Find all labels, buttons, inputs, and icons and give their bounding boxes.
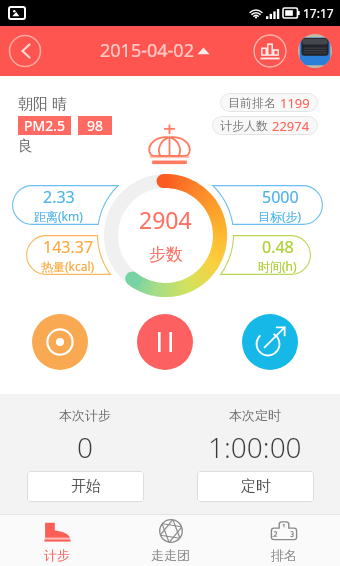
staticText: 排名 <box>271 547 297 563</box>
staticText: 143.37 <box>43 236 94 258</box>
staticText: 目前排名 <box>228 95 276 110</box>
staticText: 朝阳 晴 <box>18 93 67 113</box>
staticText: 定时 <box>241 477 271 496</box>
button[interactable]: 开始 <box>27 471 144 502</box>
staticText: 2.33 <box>43 186 75 208</box>
staticText: 1:00:00 <box>208 428 302 466</box>
button[interactable]: 走走团 <box>114 515 227 566</box>
button[interactable]: 定时 <box>197 471 314 502</box>
staticText: 走走团 <box>151 547 190 563</box>
staticText: PM2.5 <box>24 116 65 135</box>
staticText: 5000 <box>262 186 299 208</box>
staticText: 良 <box>18 137 33 156</box>
staticText: 2904 <box>139 204 192 235</box>
staticText: 步数 <box>149 244 183 265</box>
button[interactable]: 2.33 <box>12 185 124 225</box>
button[interactable]: 目前排名 <box>220 93 318 112</box>
button[interactable]: Back <box>8 34 42 68</box>
button[interactable]: 计步 <box>0 515 114 566</box>
button[interactable]: Profile <box>298 34 332 68</box>
button[interactable]: 计步人数 <box>212 116 318 135</box>
staticText: 0.48 <box>262 236 294 258</box>
staticText: 0 <box>77 428 93 466</box>
button[interactable]: 5000 <box>216 185 323 225</box>
staticText: 2015-04-02 <box>100 38 194 63</box>
staticText: 22974 <box>272 117 310 135</box>
staticText: 1199 <box>280 94 310 112</box>
staticText: 本次定时 <box>229 407 281 423</box>
button[interactable]: Record <box>32 314 88 370</box>
staticText: 计步人数 <box>220 118 268 133</box>
button[interactable]: 排名 <box>227 515 340 566</box>
staticText: 距离(km) <box>34 208 83 224</box>
staticText: 计步 <box>44 547 70 563</box>
button[interactable]: Share <box>242 314 298 370</box>
staticText: 时间(h) <box>258 258 297 274</box>
staticText: 热量(kcal) <box>41 258 95 274</box>
staticText: 本次计步 <box>59 407 111 423</box>
button[interactable]: 0.48 <box>228 235 311 275</box>
staticText: 开始 <box>71 477 101 496</box>
staticText: 98 <box>87 116 104 135</box>
button[interactable]: Pause <box>137 314 193 370</box>
button[interactable]: Statistics <box>253 34 287 68</box>
staticText: 17:17 <box>303 5 334 21</box>
button[interactable]: 143.37 <box>26 235 126 275</box>
staticText: 目标(步) <box>258 208 302 224</box>
